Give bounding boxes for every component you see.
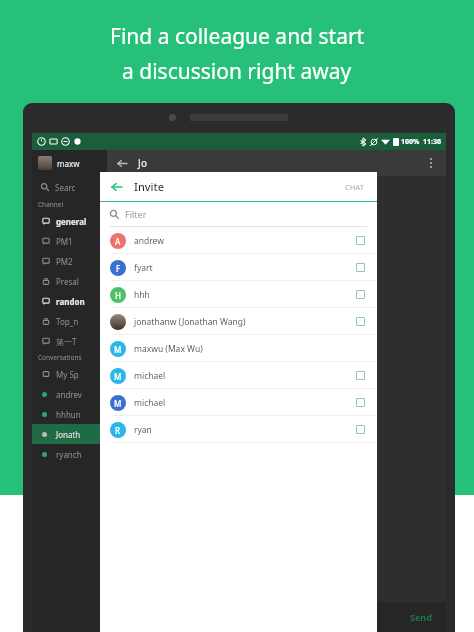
button[interactable]: andrev: [32, 384, 107, 404]
staticText: a discussion right away: [122, 57, 352, 86]
staticText: Find a colleague and start: [110, 22, 365, 51]
staticText: michael: [134, 397, 166, 409]
staticText: hhhun: [56, 409, 81, 420]
button[interactable]: Presal: [32, 271, 107, 291]
staticText: PM2: [56, 256, 73, 267]
button[interactable]: M: [100, 335, 377, 362]
staticText: F: [116, 263, 121, 274]
staticText: ryan: [134, 424, 152, 436]
staticText: M: [114, 344, 122, 355]
button[interactable]: Filter: [100, 202, 377, 226]
staticText: Filter: [125, 208, 147, 220]
button[interactable]: ryanch: [32, 444, 107, 464]
staticText: Jo: [138, 156, 148, 170]
button[interactable]: randon: [32, 291, 107, 311]
staticText: Channel: [38, 200, 64, 209]
button[interactable]: F: [100, 254, 377, 281]
staticText: andrew: [134, 235, 164, 247]
button[interactable]: PM1: [32, 231, 107, 251]
staticText: My Sp: [56, 369, 79, 380]
button[interactable]: Top_n: [32, 311, 107, 331]
button[interactable]: hhhun: [32, 404, 107, 424]
button[interactable]: maxw: [32, 150, 107, 176]
other: Search: [41, 183, 49, 191]
staticText: maxw: [57, 158, 80, 169]
button[interactable]: 第一T: [32, 331, 107, 351]
button[interactable]: M: [100, 389, 377, 416]
staticText: Jonath: [56, 429, 81, 440]
staticText: Send: [410, 611, 432, 623]
staticText: michael: [134, 370, 166, 382]
button[interactable]: Send: [406, 607, 436, 627]
staticText: M: [114, 371, 122, 382]
staticText: H: [115, 290, 121, 301]
staticText: R: [115, 425, 121, 436]
staticText: Searc: [55, 182, 76, 193]
staticText: ryanch: [56, 449, 82, 460]
button[interactable]: jonathanw (Jonathan Wang): [100, 308, 377, 335]
button[interactable]: Back: [114, 155, 130, 171]
staticText: 100%: [401, 137, 420, 147]
button[interactable]: CHAT: [342, 179, 367, 195]
button[interactable]: Jonath: [32, 424, 107, 444]
button[interactable]: Search: [32, 176, 107, 198]
staticText: fyart: [134, 262, 153, 274]
staticText: andrev: [56, 389, 82, 400]
staticText: jonathanw (Jonathan Wang): [134, 316, 246, 328]
staticText: CHAT: [345, 182, 364, 192]
staticText: Invite: [134, 179, 165, 194]
button[interactable]: My Sp: [32, 364, 107, 384]
staticText: 第一T: [56, 336, 77, 347]
staticText: hhh: [134, 289, 150, 301]
button[interactable]: general: [32, 211, 107, 231]
staticText: 11:36: [423, 137, 441, 147]
button[interactable]: More options: [423, 155, 439, 171]
button[interactable]: A: [100, 227, 377, 254]
button[interactable]: Back: [108, 178, 126, 196]
staticText: Presal: [56, 276, 79, 287]
staticText: general: [56, 216, 87, 227]
button[interactable]: R: [100, 416, 377, 443]
button[interactable]: PM2: [32, 251, 107, 271]
staticText: Conversations: [38, 353, 82, 362]
staticText: PM1: [56, 236, 73, 247]
staticText: Top_n: [56, 316, 79, 327]
button[interactable]: H: [100, 281, 377, 308]
staticText: M: [114, 398, 122, 409]
staticText: randon: [56, 296, 85, 307]
staticText: maxwu (Max Wu): [134, 343, 203, 355]
staticText: A: [115, 236, 121, 247]
button[interactable]: M: [100, 362, 377, 389]
